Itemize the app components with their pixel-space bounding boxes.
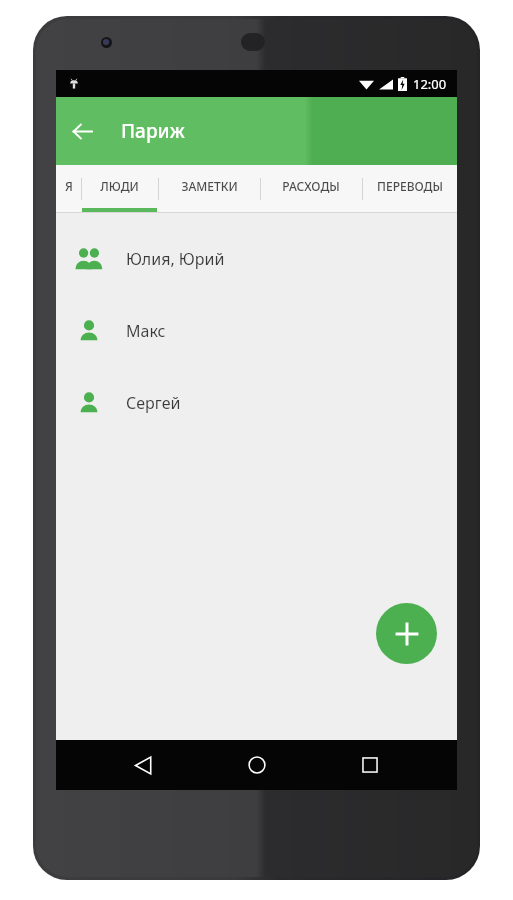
button[interactable]: ПЕРЕВОДЫ (362, 165, 457, 213)
button[interactable]: РАСХОДЫ (260, 165, 362, 213)
button[interactable]: Back (116, 740, 170, 790)
staticText: ЗАМЕТКИ (181, 178, 238, 194)
button[interactable]: ЛЮДИ (81, 165, 158, 213)
staticText: Юлия, Юрий (126, 248, 225, 270)
button[interactable]: Home (230, 740, 284, 790)
staticText: Макс (126, 320, 166, 342)
staticText: ПЕРЕВОДЫ (377, 178, 443, 194)
staticText: Париж (121, 118, 185, 144)
button[interactable]: Я (56, 165, 81, 213)
button[interactable]: Сергей (56, 367, 457, 439)
button[interactable]: Add (376, 603, 437, 664)
button[interactable]: Back (56, 105, 108, 157)
staticText: 12:00 (413, 75, 447, 93)
button[interactable]: Юлия, Юрий (56, 223, 457, 295)
staticText: Я (65, 178, 73, 194)
staticText: Сергей (126, 392, 181, 414)
staticText: РАСХОДЫ (282, 178, 340, 194)
button[interactable]: ЗАМЕТКИ (158, 165, 260, 213)
staticText: ЛЮДИ (100, 178, 139, 194)
button[interactable]: Макс (56, 295, 457, 367)
button[interactable]: Recent apps (343, 740, 397, 790)
